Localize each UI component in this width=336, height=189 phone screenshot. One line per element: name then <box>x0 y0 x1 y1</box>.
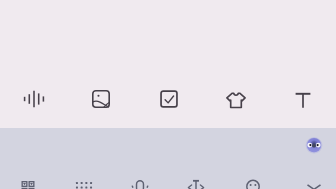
button[interactable]: Keyboard <box>72 172 96 189</box>
button[interactable]: Layout switcher <box>16 172 40 189</box>
button[interactable]: Profile avatar <box>305 137 323 155</box>
button[interactable]: Text editing <box>184 172 208 189</box>
button[interactable]: Clipboard <box>157 87 181 111</box>
button[interactable]: Text formatting <box>291 88 315 112</box>
button[interactable]: Stickers <box>224 88 248 112</box>
button[interactable]: Insert image <box>89 87 113 111</box>
button[interactable]: Collapse keyboard <box>302 172 326 189</box>
button[interactable]: Voice input <box>128 172 152 189</box>
button[interactable]: Voice message <box>22 87 46 111</box>
button[interactable]: Emoji <box>241 172 265 189</box>
